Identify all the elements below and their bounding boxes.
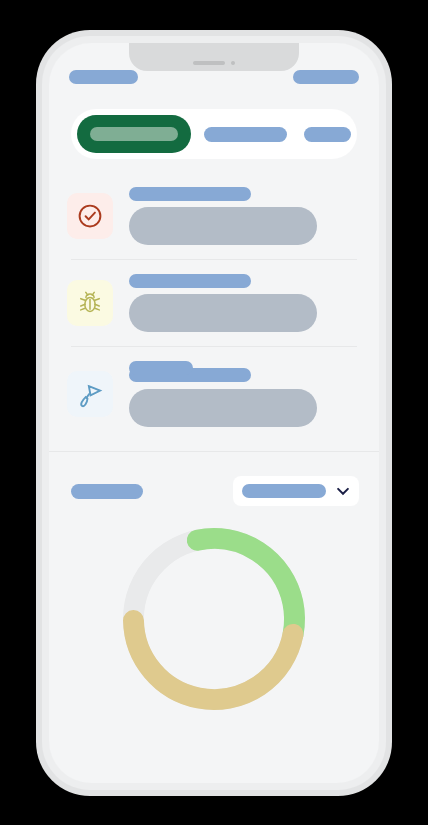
- button[interactable]: [304, 115, 351, 153]
- button[interactable]: Completed: [49, 173, 379, 259]
- button[interactable]: Pest: [49, 260, 379, 346]
- button[interactable]: [233, 476, 359, 506]
- button[interactable]: [204, 115, 287, 153]
- other: Completed: [67, 193, 113, 239]
- button[interactable]: [77, 115, 191, 153]
- other: Pest: [67, 280, 113, 326]
- other: Tools: [67, 371, 113, 417]
- button[interactable]: Tools: [49, 347, 379, 441]
